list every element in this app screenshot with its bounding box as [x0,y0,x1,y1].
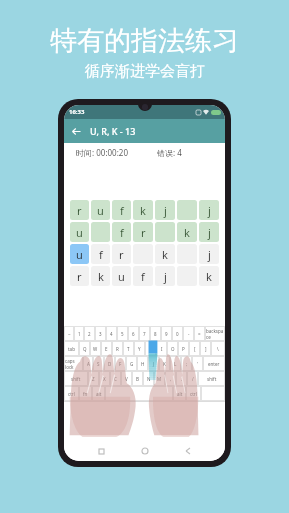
staticText: ' [197,361,199,367]
staticText: f [141,269,145,284]
staticText: C [114,376,117,382]
button[interactable]: Home [138,444,152,458]
staticText: shift [207,376,217,382]
staticText: k [162,247,168,262]
staticText: 1 [78,331,81,337]
staticText: S [97,361,100,367]
staticText: u [76,225,83,240]
staticText: alt [177,391,183,397]
staticText: enter [208,361,220,367]
staticText: f [99,247,103,262]
staticText: 7 [143,331,146,337]
staticText: G [130,361,134,367]
staticText: K [163,361,166,367]
staticText: 8 [154,331,157,337]
staticText: 6 [132,331,135,337]
staticText: A [87,361,90,367]
staticText: Q [83,346,87,352]
staticText: T [127,346,130,352]
staticText: N [147,376,151,382]
staticText: 9 [165,331,168,337]
staticText: P [182,346,185,352]
staticText: X [103,376,106,382]
staticText: \ [217,346,219,352]
staticText: J [153,361,155,367]
staticText: u [118,269,125,284]
staticText: Y [138,346,141,352]
staticText: backspace [206,328,224,340]
staticText: U, R, K - 13 [90,125,136,137]
staticText: ctrl [190,391,197,397]
staticText: 错误: 4 [157,147,182,158]
staticText: tab [68,346,75,352]
staticText: j [208,225,211,240]
button[interactable]: Recent apps [94,444,108,458]
staticText: 2 [88,331,91,337]
staticText: . [181,376,183,382]
staticText: D [108,361,112,367]
staticText: k [184,225,190,240]
staticText: = [198,331,201,337]
staticText: r [141,225,146,240]
staticText: E [105,346,108,352]
staticText: , [170,376,172,382]
staticText: M [157,376,162,382]
staticText: alt [96,391,102,397]
staticText: H [141,361,145,367]
button[interactable]: Back [68,123,84,139]
staticText: k [140,203,146,218]
staticText: r [77,203,82,218]
staticText: [ [194,346,196,352]
staticText: j [208,203,211,218]
staticText: B [136,376,139,382]
staticText: 循序渐进学会盲打 [85,62,205,81]
staticText: caps lock [65,358,82,370]
staticText: u [76,247,83,262]
staticText: 4 [110,331,113,337]
staticText: I [161,346,163,352]
staticText: Z [92,376,95,382]
staticText: shift [71,376,81,382]
staticText: 0 [176,331,179,337]
staticText: r [119,247,124,262]
staticText: ] [205,346,207,352]
staticText: 特有的指法练习 [50,24,239,58]
staticText: ~ [68,331,71,337]
staticText: k [98,269,104,284]
staticText: 5 [121,331,124,337]
staticText: O [171,346,175,352]
staticText: V [125,376,128,382]
staticText: j [208,247,211,262]
staticText: F [119,361,122,367]
staticText: 时间: 00:00:20 [76,147,128,158]
staticText: j [164,269,167,284]
staticText: / [192,376,194,382]
staticText: u [97,203,104,218]
staticText: f [120,225,124,240]
staticText: ctrl [68,391,75,397]
staticText: f [120,203,124,218]
staticText: fn [83,391,88,397]
staticText: 16:33 [69,108,85,116]
staticText: j [164,203,167,218]
staticText: L [174,361,177,367]
staticText: W [93,346,98,352]
button[interactable]: Back [181,444,195,458]
staticText: k [206,269,212,284]
staticText: 3 [99,331,102,337]
staticText: r [77,269,82,284]
staticText: ; [186,361,188,367]
staticText: - [188,331,190,337]
staticText: R [116,346,119,352]
